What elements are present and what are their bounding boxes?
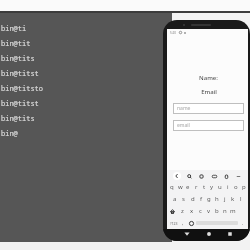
staticText: Email (201, 88, 217, 96)
staticText: r (195, 183, 198, 191)
button[interactable]: Emoji (187, 217, 196, 229)
staticText: name (177, 105, 191, 112)
staticText: s (182, 195, 185, 203)
button[interactable]: j (221, 193, 229, 205)
button[interactable]: Recents (226, 230, 234, 238)
button[interactable]: e (184, 181, 192, 193)
staticText: w (178, 183, 183, 191)
staticText: k (231, 195, 235, 203)
button[interactable]: Stickers (197, 172, 205, 180)
button[interactable]: h (213, 193, 221, 205)
button[interactable]: ?123 (168, 217, 179, 229)
staticText: d (191, 195, 195, 203)
button[interactable]: Home (205, 230, 213, 238)
button[interactable]: email (173, 120, 244, 131)
button[interactable]: l (237, 193, 245, 205)
staticText: bin@tits (1, 54, 35, 64)
button[interactable]: Shift (167, 205, 178, 217)
button[interactable]: r (192, 181, 200, 193)
button[interactable]: f (197, 193, 205, 205)
button[interactable]: y (208, 181, 216, 193)
button[interactable]: s (179, 193, 188, 205)
staticText: b (215, 207, 219, 215)
staticText: h (215, 195, 219, 203)
staticText: z (181, 207, 184, 215)
button[interactable]: a (170, 193, 179, 205)
button[interactable]: z (178, 205, 187, 217)
staticText: u (218, 183, 222, 191)
staticText: m (230, 207, 236, 215)
button[interactable]: , (179, 217, 187, 229)
button[interactable]: n (221, 205, 229, 217)
staticText: bin@ (1, 129, 18, 139)
staticText: c (199, 207, 202, 215)
button[interactable]: c (196, 205, 205, 217)
button[interactable]: u (216, 181, 224, 193)
staticText: e (186, 183, 190, 191)
staticText: t (203, 183, 206, 191)
button[interactable]: q (167, 181, 176, 193)
staticText: j (224, 195, 226, 203)
button[interactable]: Back (183, 230, 191, 238)
button[interactable]: x (187, 205, 196, 217)
button[interactable]: g (205, 193, 213, 205)
staticText: n (223, 207, 227, 215)
staticText: . (242, 220, 244, 227)
button[interactable]: Collapse toolbar (173, 172, 181, 180)
staticText: 5:20 (170, 31, 176, 35)
button[interactable]: More options (234, 172, 242, 180)
button[interactable]: k (229, 193, 237, 205)
button[interactable]: Clipboard (222, 172, 230, 180)
staticText: bin@ti (1, 24, 27, 34)
staticText: v (207, 207, 211, 215)
button[interactable]: v (205, 205, 213, 217)
staticText: bin@tits (1, 114, 35, 124)
staticText: o (234, 183, 238, 191)
staticText: x (190, 207, 194, 215)
button[interactable]: o (232, 181, 240, 193)
button[interactable]: m (229, 205, 237, 217)
staticText: q (170, 183, 174, 191)
staticText: l (240, 195, 242, 203)
button[interactable]: . (238, 217, 247, 229)
staticText: Name: (199, 74, 218, 82)
button[interactable]: b (213, 205, 221, 217)
button[interactable]: t (200, 181, 208, 193)
staticText: g (207, 195, 211, 203)
button[interactable]: w (176, 181, 184, 193)
button[interactable]: i (224, 181, 232, 193)
staticText: bin@titst (1, 99, 39, 109)
staticText: p (242, 183, 246, 191)
staticText: ?123 (170, 221, 178, 226)
button[interactable]: Search (185, 172, 193, 180)
staticText: bin@titst (1, 69, 39, 79)
staticText: bin@titsto (1, 84, 43, 94)
button[interactable]: name (173, 103, 244, 114)
staticText: email (177, 122, 190, 129)
staticText: bin@tit (1, 39, 31, 49)
button[interactable]: GIF (210, 172, 218, 180)
staticText: a (173, 195, 177, 203)
staticText: , (182, 220, 184, 227)
staticText: y (210, 183, 214, 191)
staticText: i (227, 183, 229, 191)
button[interactable]: d (188, 193, 197, 205)
staticText: f (200, 195, 203, 203)
button[interactable]: p (240, 181, 248, 193)
